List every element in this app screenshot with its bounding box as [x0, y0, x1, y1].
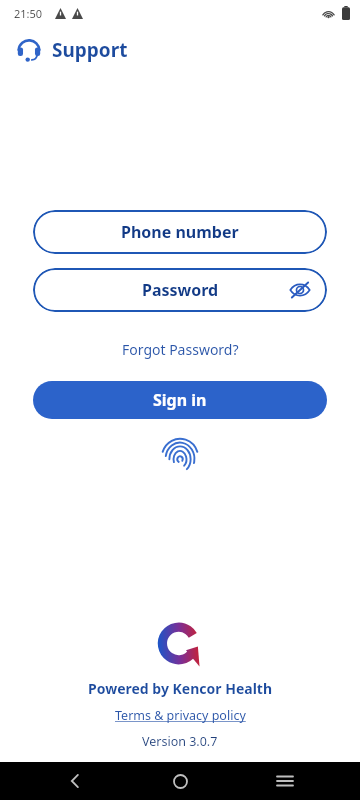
staticText: 21:50 — [14, 6, 43, 21]
staticText: Support — [52, 37, 128, 63]
button[interactable]: Forgot Password? — [114, 336, 247, 363]
button[interactable]: Sign in with fingerprint — [156, 433, 204, 481]
button[interactable]: Recent apps — [270, 766, 300, 796]
button[interactable]: Home — [165, 766, 195, 796]
button[interactable]: Back — [60, 766, 90, 796]
button[interactable]: Phone number — [33, 210, 327, 254]
button[interactable]: Sign in — [33, 381, 327, 419]
staticText: Password — [142, 279, 219, 301]
staticText: Forgot Password? — [122, 340, 239, 359]
button[interactable]: Terms & privacy policy — [109, 705, 252, 726]
button[interactable]: Support — [0, 26, 360, 74]
staticText: Powered by Kencor Health — [88, 679, 272, 698]
staticText: Phone number — [121, 221, 239, 243]
button[interactable]: Show password — [285, 275, 315, 305]
button[interactable]: Password — [33, 268, 327, 312]
staticText: Version 3.0.7 — [142, 733, 218, 750]
staticText: Sign in — [153, 389, 207, 411]
staticText: Terms & privacy policy — [115, 707, 246, 724]
